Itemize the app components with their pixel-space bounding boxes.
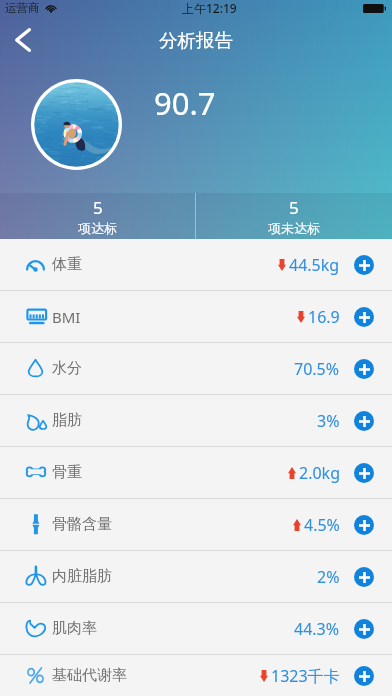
staticText: 内脏脂肪 — [52, 567, 112, 586]
staticText: 90.7 — [154, 82, 216, 124]
staticText: 44.3% — [294, 618, 340, 640]
staticText: 水分 — [52, 359, 82, 378]
button[interactable]: Add 骨骼含量 — [354, 515, 374, 535]
button[interactable]: Add 基础代谢率 — [354, 666, 374, 686]
button[interactable]: 骨骼含量 — [0, 499, 392, 550]
staticText: 运营商 — [5, 1, 40, 15]
button[interactable]: Profile photo — [31, 79, 122, 170]
staticText: 5 — [289, 196, 299, 219]
button[interactable]: Add 脂肪 — [354, 411, 374, 431]
button[interactable]: 肌肉率 — [0, 603, 392, 654]
staticText: 基础代谢率 — [52, 666, 127, 685]
button[interactable]: 5 — [0, 193, 195, 239]
staticText: 70.5% — [294, 358, 340, 380]
button[interactable]: 基础代谢率 — [0, 655, 392, 696]
staticText: 肌肉率 — [52, 619, 97, 638]
staticText: 骨重 — [52, 463, 82, 482]
button[interactable]: Add 肌肉率 — [354, 619, 374, 639]
button[interactable]: Add 水分 — [354, 359, 374, 379]
button[interactable]: 5 — [196, 193, 392, 239]
button[interactable]: 内脏脂肪 — [0, 551, 392, 602]
staticText: 16.9 — [308, 306, 340, 328]
staticText: 4.5% — [304, 514, 340, 536]
staticText: 脂肪 — [52, 411, 82, 430]
staticText: 2% — [317, 566, 340, 588]
staticText: 3% — [317, 410, 340, 432]
staticText: 分析报告 — [159, 29, 233, 52]
button[interactable]: 脂肪 — [0, 395, 392, 446]
button[interactable]: Add 体重 — [354, 255, 374, 275]
button[interactable]: Add 骨重 — [354, 463, 374, 483]
button[interactable]: Back — [0, 20, 46, 60]
button[interactable]: 骨重 — [0, 447, 392, 498]
staticText: 5 — [93, 196, 103, 219]
staticText: 骨骼含量 — [52, 515, 112, 534]
staticText: 体重 — [52, 255, 82, 274]
staticText: 44.5kg — [289, 254, 340, 276]
staticText: 项未达标 — [268, 220, 320, 236]
button[interactable]: BMI — [0, 291, 392, 342]
staticText: 2.0kg — [299, 462, 340, 484]
staticText: 1323千卡 — [271, 665, 340, 687]
button[interactable]: Add BMI — [354, 307, 374, 327]
staticText: 上午12:19 — [182, 0, 237, 16]
staticText: BMI — [52, 307, 81, 327]
button[interactable]: 体重 — [0, 239, 392, 290]
button[interactable]: Add 内脏脂肪 — [354, 567, 374, 587]
button[interactable]: 水分 — [0, 343, 392, 394]
staticText: 项达标 — [78, 220, 117, 236]
